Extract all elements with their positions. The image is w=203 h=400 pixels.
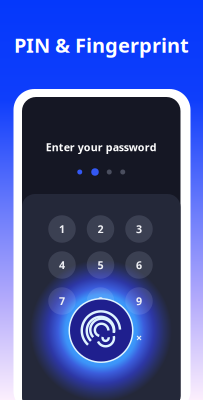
button[interactable]: × [125,324,153,351]
staticText: 2 [97,222,103,236]
button[interactable]: blank [48,324,76,351]
button[interactable]: 2 [87,215,114,243]
button[interactable]: 8 [87,287,114,315]
staticText: × [136,330,142,345]
staticText: Enter your password [46,140,157,154]
button[interactable]: 5 [87,251,114,279]
staticText: 9 [136,294,142,308]
staticText: 4 [59,258,65,272]
button[interactable]: 9 [125,287,153,315]
staticText: 6 [136,258,142,272]
button[interactable]: 0 [87,324,114,351]
staticText: 5 [97,258,103,272]
button[interactable]: Unlock with fingerprint [68,297,134,363]
button[interactable]: 6 [125,251,153,279]
staticText: 7 [59,294,65,308]
button[interactable]: 4 [48,251,76,279]
button[interactable]: 1 [48,215,76,243]
button[interactable]: 3 [125,215,153,243]
staticText: 8 [97,294,103,308]
staticText: 1 [59,222,65,236]
staticText: 3 [136,222,142,236]
staticText: 0 [97,330,103,345]
staticText: PIN & Fingerprint [14,32,189,58]
button[interactable]: 7 [48,287,76,315]
